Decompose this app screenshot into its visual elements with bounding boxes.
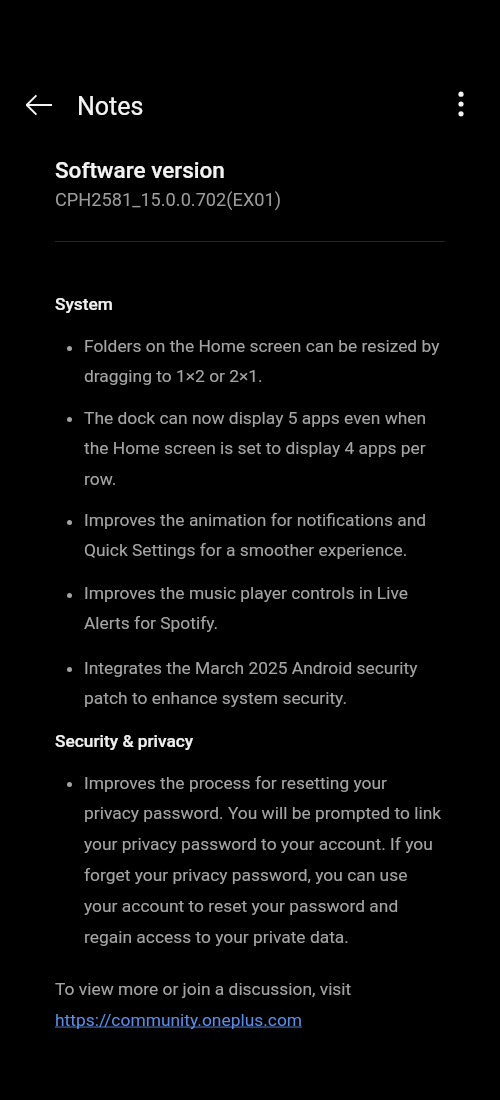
- button[interactable]: More options: [437, 80, 485, 128]
- staticText: Folders on the Home screen can be resize…: [84, 336, 445, 386]
- staticText: Security & privacy: [55, 731, 194, 751]
- staticText: Notes: [77, 92, 144, 121]
- staticText: Improves the process for resetting your …: [84, 773, 445, 947]
- staticText: Improves the music player controls in Li…: [84, 583, 445, 633]
- button[interactable]: https://community.oneplus.com: [55, 1010, 303, 1030]
- staticText: Integrates the March 2025 Android securi…: [84, 658, 445, 708]
- button[interactable]: Back: [15, 81, 63, 129]
- staticText: Software version: [55, 157, 225, 183]
- staticText: System: [55, 294, 113, 314]
- staticText: The dock can now display 5 apps even whe…: [84, 408, 445, 489]
- staticText: CPH2581_15.0.0.702(EX01): [55, 189, 282, 210]
- staticText: Improves the animation for notifications…: [84, 510, 445, 560]
- staticText: To view more or join a discussion, visit: [55, 979, 445, 999]
- staticText: https://community.oneplus.com: [55, 1010, 303, 1030]
